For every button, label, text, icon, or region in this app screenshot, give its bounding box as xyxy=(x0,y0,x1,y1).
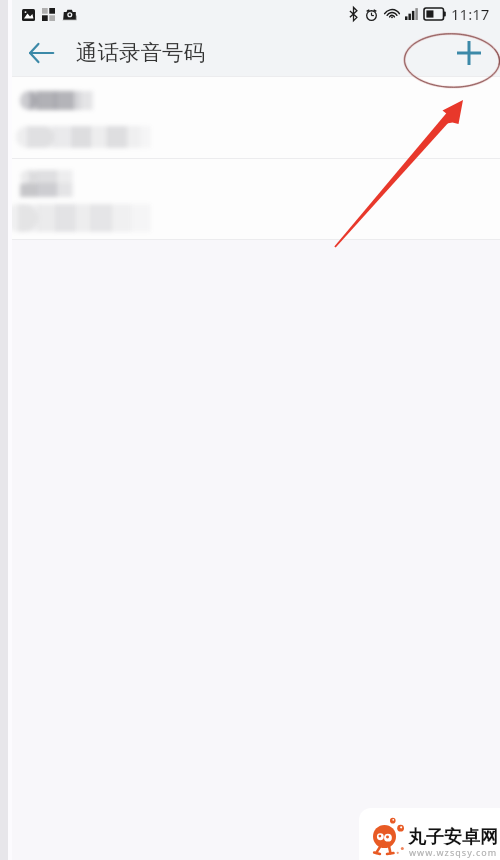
staticText: 11:17 xyxy=(451,4,490,24)
button[interactable] xyxy=(0,77,500,158)
button[interactable]: Back xyxy=(23,35,59,71)
button[interactable]: Add xyxy=(449,33,489,73)
staticText: www.wzsqsy.com xyxy=(409,846,498,858)
button[interactable] xyxy=(0,158,500,240)
staticText: 丸子安卓网 xyxy=(408,826,498,849)
staticText: 通话录音号码 xyxy=(76,39,205,66)
